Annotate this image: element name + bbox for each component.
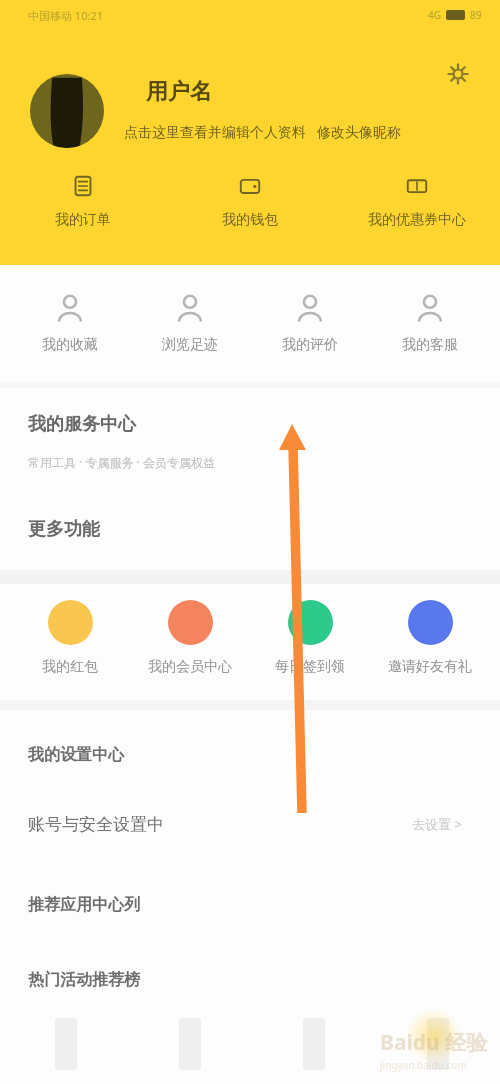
staticText: 浏览足迹 [162,336,218,354]
button[interactable]: 我的优惠券中心 [333,175,500,229]
button[interactable]: 我的收藏 [10,294,130,354]
button[interactable] [4,1018,128,1070]
staticText: 用户名 [146,78,212,106]
button[interactable]: 账号与安全设置中 [0,803,500,845]
staticText: 推荐应用中心列 [28,895,140,915]
button[interactable]: 我的订单 [0,175,166,229]
staticText: 4G [428,8,441,22]
button[interactable] [376,1018,500,1070]
button[interactable] [252,1018,376,1070]
staticText: 我的客服 [402,336,458,354]
staticText: 邀请好友有礼 [388,658,472,676]
staticText: 我的会员中心 [148,658,232,676]
button[interactable]: 浏览足迹 [130,294,250,354]
staticText: 点击这里查看并编辑个人资料 修改头像昵称 [124,122,401,141]
staticText: 中国移动 10:21 [28,8,103,23]
staticText: jingyan.baidu.com [380,1058,467,1072]
staticText: 热门活动推荐榜 [28,970,140,990]
staticText: 更多功能 [28,518,100,541]
staticText: 我的订单 [55,211,111,229]
button[interactable] [128,1018,252,1070]
button[interactable]: 设置 [446,62,470,86]
staticText: 我的钱包 [222,211,278,229]
button[interactable]: 我的钱包 [166,175,333,229]
staticText: 我的设置中心 [28,745,124,765]
button[interactable]: 邀请好友有礼 [370,600,490,676]
staticText: 每日签到领 [275,658,345,676]
staticText: 我的红包 [42,658,98,676]
staticText: 我的优惠券中心 [368,211,466,229]
staticText: 89 [470,8,482,22]
staticText: 去设置 > [412,815,462,833]
staticText: 我的服务中心 [28,413,136,436]
button[interactable]: 用户头像 [30,74,104,148]
staticText: Baidu 经验 [380,1028,488,1057]
button[interactable]: 我的评价 [250,294,370,354]
staticText: 我的评价 [282,336,338,354]
button[interactable]: 我的红包 [10,600,130,676]
button[interactable]: 每日签到领 [250,600,370,676]
staticText: 账号与安全设置中 [28,814,164,835]
button[interactable]: 我的客服 [370,294,490,354]
button[interactable]: 我的会员中心 [130,600,250,676]
staticText: 我的收藏 [42,336,98,354]
staticText: 常用工具 · 专属服务 · 会员专属权益 [28,454,215,470]
